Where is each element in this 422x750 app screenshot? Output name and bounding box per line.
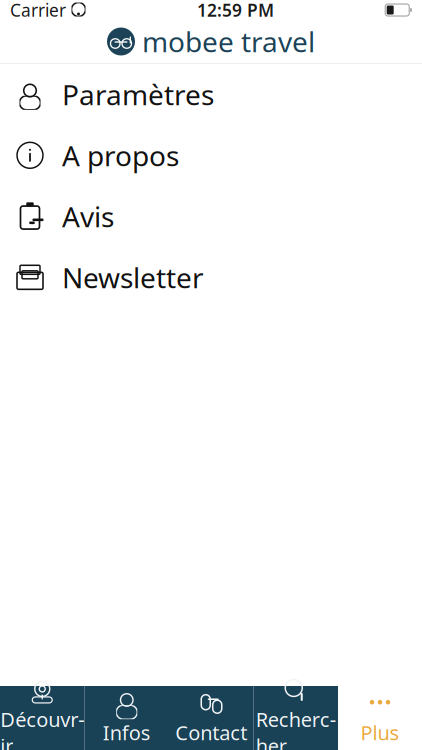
staticText: Carrier (10, 0, 66, 21)
staticText: Paramètres (62, 76, 214, 113)
staticText: Contact (175, 719, 247, 746)
staticText: A propos (62, 137, 179, 174)
staticText: Rechercher (256, 706, 336, 750)
staticText: Avis (62, 198, 114, 235)
button[interactable]: A propos (0, 125, 422, 186)
button[interactable]: Infos (84, 686, 169, 750)
staticText: mobee travel (142, 23, 315, 60)
staticText: Plus (360, 719, 399, 746)
button[interactable]: Avis (0, 186, 422, 247)
staticText: Infos (103, 719, 151, 746)
staticText: Découvrir (0, 706, 84, 750)
staticText: 12:59 PM (197, 0, 274, 21)
staticText: Newsletter (62, 259, 204, 296)
button[interactable]: Newsletter (0, 247, 422, 308)
button[interactable]: Paramètres (0, 64, 422, 125)
button[interactable]: Plus (338, 686, 422, 750)
button[interactable]: Découvrir (0, 686, 84, 750)
button[interactable]: Rechercher (253, 686, 338, 750)
button[interactable]: Contact (169, 686, 253, 750)
